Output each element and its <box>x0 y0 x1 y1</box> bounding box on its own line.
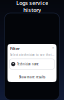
staticText: Logs service history <box>16 0 48 14</box>
staticText: ✕ <box>52 46 54 49</box>
staticText: Select a technician to see their logs <box>10 53 54 57</box>
staticText: Show more results <box>19 75 45 79</box>
staticText: Filter <box>10 46 20 51</box>
button[interactable]: Close <box>51 46 55 50</box>
button[interactable]: Technician name <box>7 59 56 69</box>
staticText: Technician name <box>17 62 39 66</box>
button[interactable]: Show more results <box>7 75 56 82</box>
